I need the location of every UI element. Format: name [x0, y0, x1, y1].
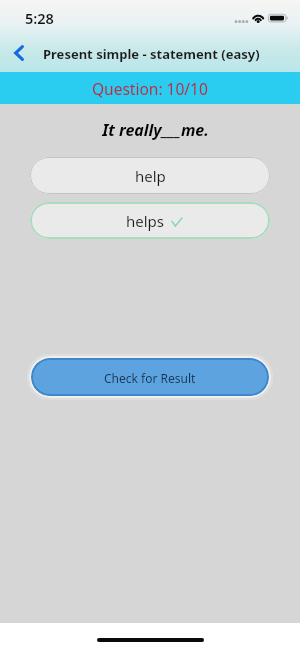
staticText: Question: 10/10	[92, 78, 208, 99]
staticText: help	[135, 166, 166, 186]
button[interactable]: Back	[0, 36, 36, 72]
staticText: It really___me.	[11, 119, 300, 141]
staticText: Present simple - statement (easy)	[43, 45, 260, 63]
staticText: Check for Result	[104, 370, 196, 386]
staticText: 5:28	[25, 8, 54, 28]
button[interactable]: Check for Result	[31, 358, 269, 396]
staticText: helps	[126, 211, 165, 231]
button[interactable]: helps	[30, 202, 270, 239]
button[interactable]: help	[30, 157, 270, 194]
